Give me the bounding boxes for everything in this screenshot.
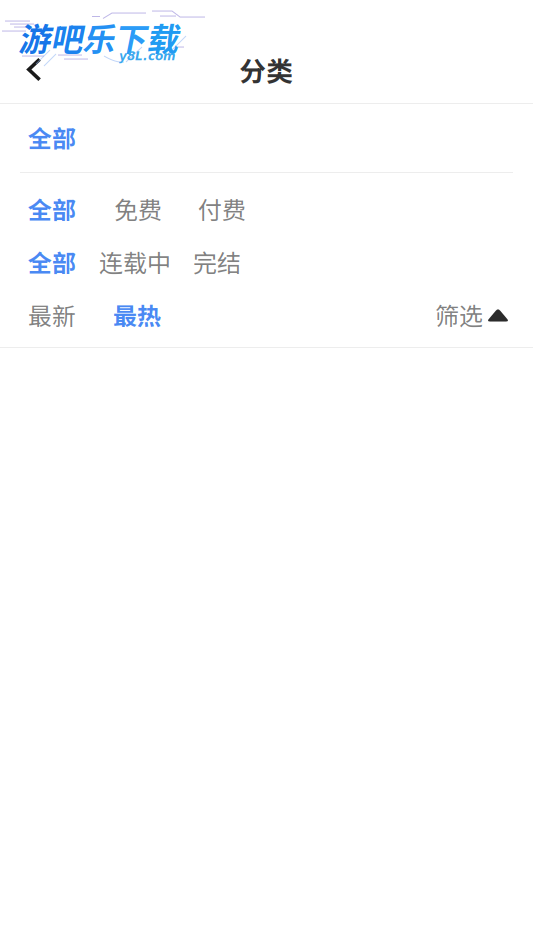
staticText: 筛选	[435, 297, 483, 332]
button[interactable]: 全部	[28, 182, 76, 235]
staticText: 分类	[239, 50, 293, 89]
staticText: 最热	[113, 297, 161, 332]
button[interactable]: 筛选	[435, 288, 509, 341]
button[interactable]: 最新	[28, 288, 76, 341]
staticText: 全部	[28, 120, 76, 154]
staticText: 吧	[50, 14, 82, 60]
staticText: y8L.com	[119, 49, 176, 63]
staticText: 完结	[193, 244, 241, 279]
staticText: 全部	[28, 191, 76, 226]
staticText: 游	[18, 14, 50, 60]
staticText: 全部	[28, 244, 76, 279]
button[interactable]: 连载中	[76, 235, 171, 288]
staticText: 连载中	[99, 244, 171, 279]
staticText: 下	[114, 14, 146, 60]
staticText: 免费	[114, 191, 162, 226]
button[interactable]: 完结	[171, 235, 241, 288]
staticText: 载	[146, 14, 178, 60]
button[interactable]: Back	[0, 36, 60, 103]
button[interactable]: 全部	[28, 235, 76, 288]
button[interactable]: 免费	[76, 182, 162, 235]
button[interactable]: 全部	[28, 110, 76, 163]
button[interactable]: 最热	[76, 288, 161, 341]
button[interactable]: 付费	[162, 182, 246, 235]
staticText: 最新	[28, 297, 76, 332]
staticText: 乐	[82, 14, 114, 60]
staticText: 付费	[198, 191, 246, 226]
